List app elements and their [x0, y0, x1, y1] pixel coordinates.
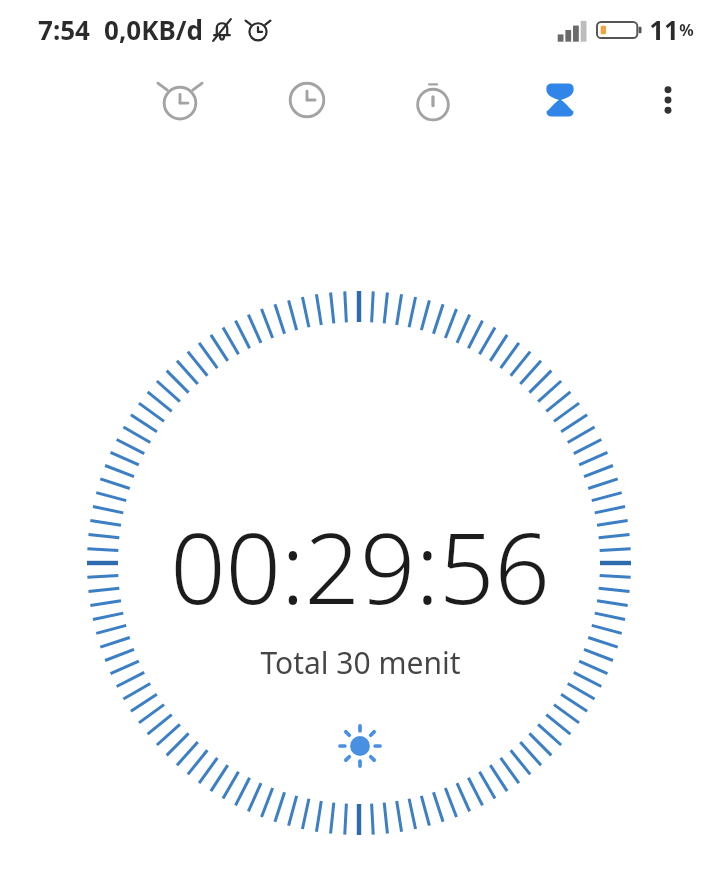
- staticText: %: [679, 19, 694, 41]
- staticText: Total 30 menit: [260, 642, 461, 683]
- staticText: 0,0KB/d: [104, 12, 203, 47]
- button[interactable]: Clock: [275, 68, 339, 132]
- button[interactable]: More options: [640, 72, 696, 128]
- staticText: 11: [649, 12, 679, 47]
- button[interactable]: Stopwatch: [401, 68, 465, 132]
- button[interactable]: Alarm: [148, 68, 212, 132]
- staticText: 7:54: [38, 12, 90, 47]
- button[interactable]: Timer: [528, 68, 592, 132]
- staticText: 00:29:56: [170, 500, 550, 632]
- button[interactable]: Brightness: [330, 716, 390, 776]
